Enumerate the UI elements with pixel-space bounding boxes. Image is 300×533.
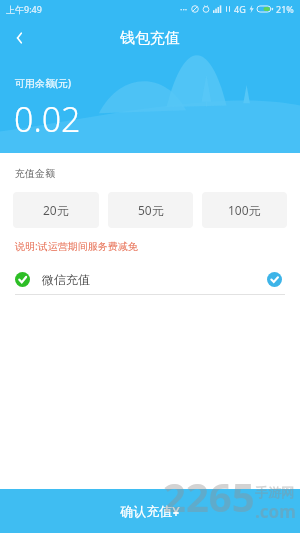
staticText: 20元: [43, 202, 69, 218]
staticText: 充值金额: [15, 167, 55, 180]
staticText: 50元: [138, 202, 164, 218]
staticText: 0.02: [14, 96, 81, 142]
staticText: 微信充值: [42, 272, 90, 287]
staticText: 确认充值¥: [120, 502, 180, 520]
staticText: 手游网: [255, 484, 294, 500]
button[interactable]: Selected: [263, 268, 285, 290]
button[interactable]: 20元: [13, 192, 99, 228]
button[interactable]: 确认充值¥: [0, 489, 300, 533]
button[interactable]: Back: [0, 18, 40, 58]
staticText: 钱包充值: [120, 29, 180, 48]
staticText: 2265: [163, 469, 255, 523]
staticText: 上午9:49: [6, 3, 42, 15]
staticText: 21%: [276, 3, 294, 15]
staticText: 可用余额(元): [15, 76, 71, 90]
staticText: 100元: [228, 202, 261, 218]
staticText: 说明:试运营期间服务费减免: [15, 239, 138, 253]
staticText: ···: [180, 3, 188, 15]
button[interactable]: 微信充值: [0, 264, 300, 294]
button[interactable]: 50元: [108, 192, 193, 228]
button[interactable]: 100元: [202, 192, 287, 228]
staticText: .com: [255, 500, 296, 523]
staticText: 4G: [234, 3, 246, 15]
